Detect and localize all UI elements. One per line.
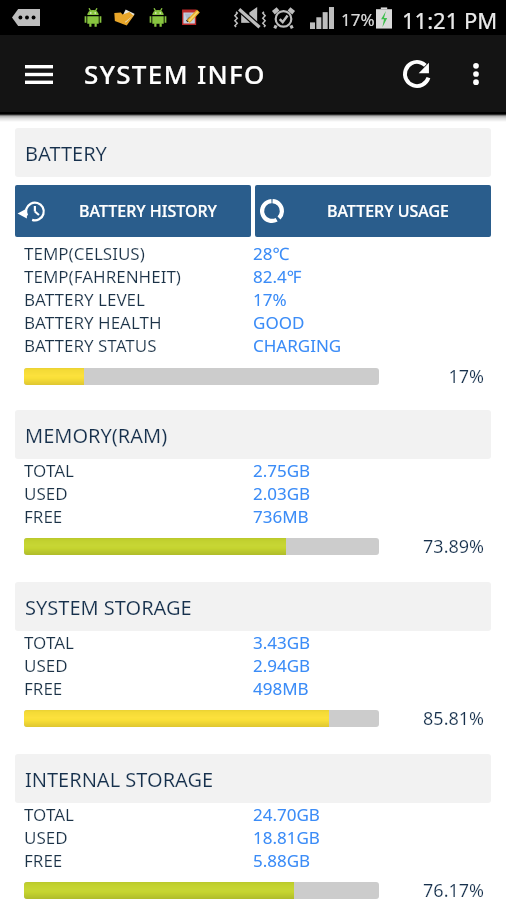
staticText: 736MB [253, 505, 309, 528]
staticText: FREE [24, 849, 63, 872]
staticText: BATTERY [25, 140, 107, 167]
staticText: GOOD [253, 311, 305, 334]
staticText: SYSTEM INFO [84, 56, 266, 91]
staticText: BATTERY HEALTH [24, 311, 162, 334]
button[interactable]: BATTERY USAGE [255, 185, 491, 237]
staticText: 73.89% [423, 534, 484, 559]
staticText: 17% [341, 8, 375, 31]
staticText: TOTAL [24, 631, 74, 654]
staticText: FREE [24, 677, 63, 700]
staticText: FREE [24, 505, 63, 528]
staticText: USED [24, 482, 68, 505]
staticText: BATTERY STATUS [24, 334, 157, 357]
staticText: SYSTEM STORAGE [25, 594, 192, 621]
staticText: 17% [253, 288, 287, 311]
staticText: USED [24, 654, 68, 677]
staticText: TOTAL [24, 459, 74, 482]
staticText: 76.17% [423, 878, 484, 900]
staticText: 82.4℉ [253, 265, 302, 288]
staticText: 11:21 PM [402, 5, 498, 35]
button[interactable]: More options [448, 46, 503, 101]
staticText: USED [24, 826, 68, 849]
staticText: 2.03GB [253, 482, 311, 505]
staticText: INTERNAL STORAGE [25, 766, 214, 793]
staticText: BATTERY HISTORY [79, 200, 217, 222]
staticText: TOTAL [24, 803, 74, 826]
staticText: 28℃ [253, 242, 290, 265]
button[interactable]: Refresh [389, 46, 444, 101]
staticText: 18.81GB [253, 826, 320, 849]
staticText: BATTERY LEVEL [24, 288, 145, 311]
staticText: CHARGING [253, 334, 342, 357]
staticText: 17% [448, 364, 484, 389]
staticText: 5.88GB [253, 849, 311, 872]
staticText: TEMP(FAHRENHEIT) [24, 265, 181, 288]
staticText: 498MB [253, 677, 309, 700]
staticText: 2.75GB [253, 459, 311, 482]
staticText: 24.70GB [253, 803, 320, 826]
staticText: MEMORY(RAM) [25, 422, 168, 449]
staticText: 3.43GB [253, 631, 311, 654]
button[interactable]: BATTERY HISTORY [15, 185, 251, 237]
staticText: 2.94GB [253, 654, 311, 677]
button[interactable]: Open navigation menu [11, 46, 67, 102]
staticText: TEMP(CELSIUS) [24, 242, 145, 265]
staticText: 85.81% [423, 706, 484, 731]
staticText: BATTERY USAGE [327, 200, 449, 222]
